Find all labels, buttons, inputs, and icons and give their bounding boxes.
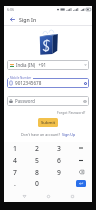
button[interactable]: India (IN) +91 [7, 60, 89, 70]
staticText: India (IN) +91 [16, 62, 47, 68]
button[interactable]: Sign Up [62, 132, 76, 137]
button[interactable]: . [4, 178, 26, 189]
button[interactable]: Home [44, 192, 52, 200]
staticText: 5 [35, 156, 39, 165]
staticText: . [14, 179, 16, 188]
button[interactable]: 6 [48, 154, 70, 166]
button[interactable]: 1 [4, 142, 26, 154]
button[interactable]: Password [7, 96, 89, 106]
staticText: Password [15, 98, 35, 104]
button[interactable]: 9012345678 [7, 78, 89, 88]
button[interactable]: 7 [4, 166, 26, 178]
staticText: 9 [57, 168, 61, 177]
other: Enter [76, 180, 86, 187]
staticText: 9012345678 [15, 80, 42, 86]
button[interactable]: 8 [26, 166, 48, 178]
button[interactable]: Back [8, 15, 17, 24]
staticText: 3 [57, 144, 61, 153]
staticText: Don't have an account? [21, 132, 62, 137]
staticText: Sign In [19, 16, 37, 23]
button[interactable]: Submit [38, 118, 58, 127]
staticText: Submit [41, 120, 56, 126]
staticText: 6:06 [7, 7, 15, 12]
staticText: 2 [35, 144, 39, 153]
button[interactable]: 5 [26, 154, 48, 166]
button[interactable] [70, 142, 92, 154]
staticText: 7 [13, 168, 17, 177]
button[interactable]: 3 [48, 142, 70, 154]
staticText: Sign Up [62, 132, 76, 137]
staticText: 1 [13, 144, 17, 153]
button[interactable] [70, 154, 92, 166]
button[interactable]: 2 [26, 142, 48, 154]
button[interactable]: Backspace [70, 166, 92, 178]
button[interactable]: Back [20, 192, 28, 200]
button[interactable]: 0 [26, 178, 48, 189]
staticText: Forgot Password? [57, 110, 86, 115]
other: Backspace [78, 169, 84, 175]
button[interactable]: Enter [70, 178, 92, 189]
button[interactable]: Show password [82, 99, 87, 104]
staticText: Mobile Number [10, 76, 32, 80]
button[interactable]: 9 [48, 166, 70, 178]
staticText: 6 [57, 156, 61, 165]
button[interactable]: 4 [4, 154, 26, 166]
staticText: 8 [35, 168, 39, 177]
button[interactable]: Recents [68, 192, 76, 200]
staticText: 4 [13, 156, 17, 165]
button[interactable]: Forgot Password? [56, 109, 87, 116]
staticText: 0 [35, 179, 39, 188]
